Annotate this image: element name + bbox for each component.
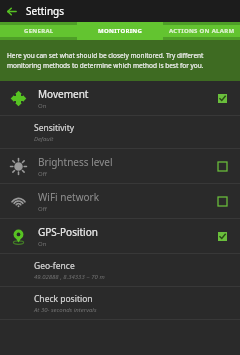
button[interactable]: MONITORING	[77, 22, 163, 40]
staticText: At 30- seconds intervals	[34, 306, 97, 314]
button[interactable]: Disabled	[213, 157, 231, 175]
staticText: Geo-fence	[34, 260, 75, 272]
button[interactable]: ACTIONS ON ALARM	[163, 22, 240, 40]
staticText: WiFi network	[38, 190, 100, 204]
button[interactable]: Geo-fence	[0, 254, 240, 286]
button[interactable]: WiFi network	[0, 184, 240, 218]
staticText: Settings	[26, 4, 65, 18]
staticText: GENERAL	[24, 27, 54, 35]
staticText: Here you can set what should be closely …	[7, 51, 233, 70]
button[interactable]: GENERAL	[0, 22, 77, 40]
staticText: Default	[34, 135, 54, 143]
staticText: Sensitivity	[34, 122, 75, 134]
staticText: Off	[38, 205, 47, 213]
staticText: 49.02888 , 8.34333 ~ 70 m	[34, 273, 105, 281]
button[interactable]: Sensitivity	[0, 116, 240, 148]
button[interactable]: Disabled	[213, 192, 231, 210]
staticText: On	[38, 102, 47, 110]
staticText: On	[38, 240, 47, 248]
button[interactable]: Enabled	[213, 89, 231, 107]
button[interactable]: Brightness level	[0, 149, 240, 183]
staticText: GPS-Position	[38, 225, 98, 239]
staticText: MONITORING	[98, 27, 143, 35]
staticText: Off	[38, 170, 47, 178]
staticText: Brightness level	[38, 155, 113, 169]
button[interactable]: Check position	[0, 287, 240, 319]
button[interactable]: GPS-Position	[0, 219, 240, 253]
staticText: ACTIONS ON ALARM	[169, 27, 235, 35]
staticText: Check position	[34, 293, 93, 305]
button[interactable]: Enabled	[213, 227, 231, 245]
button[interactable]: Back	[0, 0, 22, 22]
staticText: Movement	[38, 87, 89, 101]
button[interactable]: Movement	[0, 81, 240, 115]
